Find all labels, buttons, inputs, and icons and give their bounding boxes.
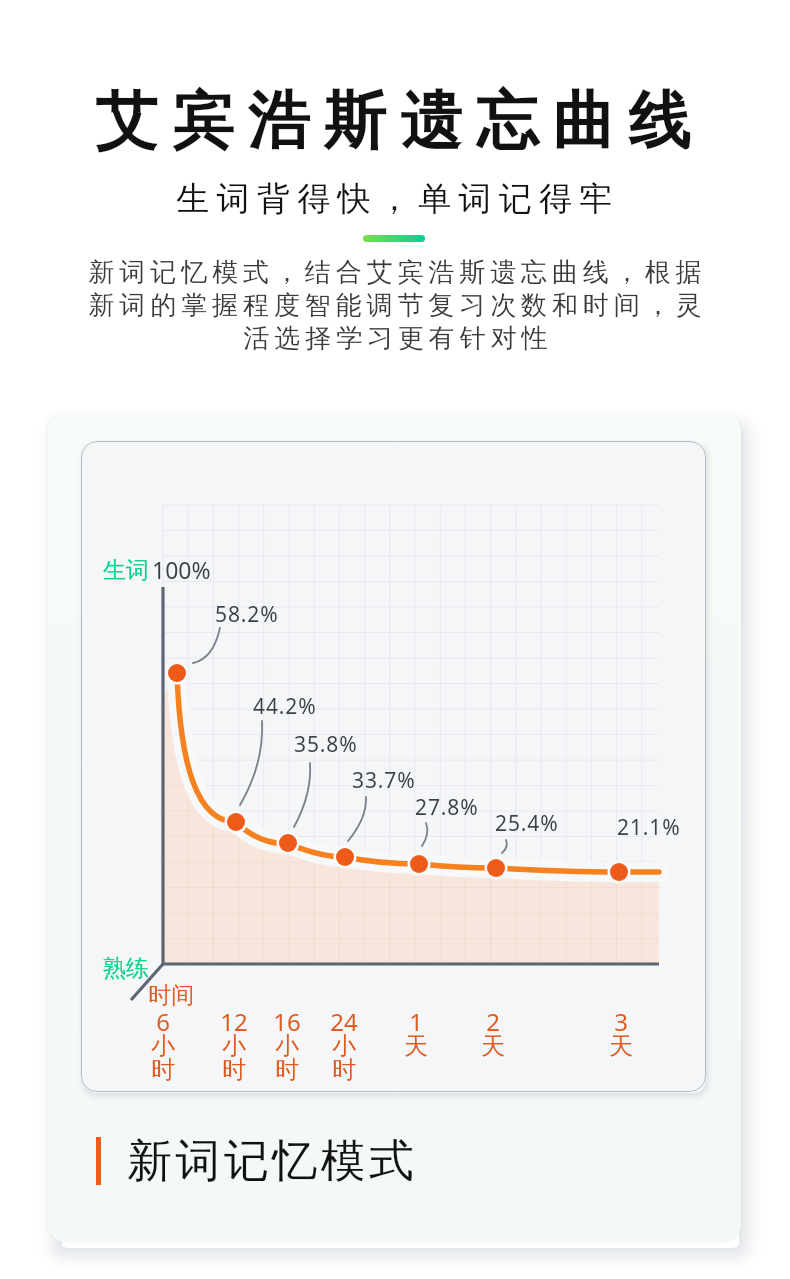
staticText: 天: [463, 1031, 523, 1061]
button[interactable]: 新词记忆模式: [96, 1130, 426, 1192]
staticText: 3: [591, 1005, 651, 1038]
staticText: 小: [204, 1031, 264, 1061]
staticText: 16: [257, 1005, 317, 1038]
staticText: 100%: [152, 554, 211, 585]
staticText: 生词背得快，单词记得牢: [3, 178, 790, 220]
staticText: 33.7%: [352, 766, 416, 795]
staticText: 时: [204, 1055, 264, 1085]
staticText: 1: [386, 1005, 446, 1038]
staticText: 时: [257, 1055, 317, 1085]
staticText: 时: [133, 1055, 193, 1085]
staticText: 小: [314, 1031, 374, 1061]
staticText: 44.2%: [253, 692, 317, 721]
staticText: 天: [386, 1031, 446, 1061]
staticText: 时间: [148, 981, 194, 1010]
staticText: 21.1%: [617, 813, 681, 842]
staticText: 35.8%: [294, 730, 358, 759]
staticText: 天: [591, 1031, 651, 1061]
staticText: 熟练: [103, 954, 149, 983]
staticText: 新词的掌握程度智能调节复习次数和时间，灵: [86, 289, 704, 322]
staticText: 艾宾浩斯遗忘曲线: [5, 82, 790, 160]
staticText: 6: [133, 1005, 193, 1038]
staticText: 时: [314, 1055, 374, 1085]
staticText: 新词记忆模式: [127, 1133, 418, 1190]
staticText: 25.4%: [495, 809, 559, 838]
staticText: 12: [204, 1005, 264, 1038]
staticText: 24: [314, 1005, 374, 1038]
staticText: 活选择学习更有针对性: [241, 322, 550, 355]
staticText: 58.2%: [215, 600, 279, 629]
staticText: 生词: [103, 556, 149, 585]
staticText: 小: [133, 1031, 193, 1061]
staticText: 小: [257, 1031, 317, 1061]
staticText: 27.8%: [415, 793, 479, 822]
staticText: 新词记忆模式，结合艾宾浩斯遗忘曲线，根据: [86, 256, 704, 289]
staticText: 2: [463, 1005, 523, 1038]
